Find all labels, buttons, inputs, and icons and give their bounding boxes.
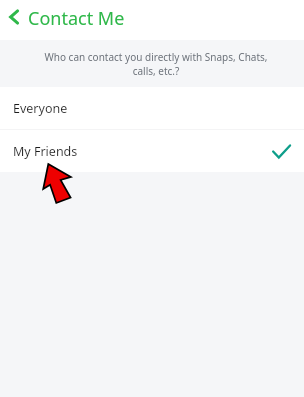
button[interactable]: Back xyxy=(0,0,28,40)
button[interactable]: Everyone xyxy=(0,87,304,129)
staticText: My Friends xyxy=(13,143,78,160)
staticText: Everyone xyxy=(13,100,68,117)
button[interactable]: My Friends xyxy=(0,130,304,172)
staticText: Contact Me xyxy=(28,6,125,31)
staticText: Who can contact you directly with Snaps,… xyxy=(40,50,272,78)
